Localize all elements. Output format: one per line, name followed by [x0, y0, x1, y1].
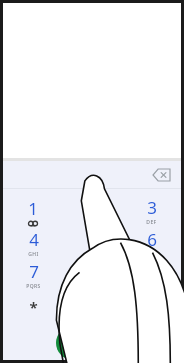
staticText: 6 [147, 228, 157, 251]
staticText: 1 [28, 197, 38, 220]
button[interactable]: 0 [63, 291, 122, 323]
button[interactable]: * [3, 291, 63, 323]
staticText: PQRS [26, 283, 41, 290]
button[interactable]: 4 [3, 227, 63, 259]
staticText: JKL [89, 251, 98, 258]
staticText: GHI [28, 251, 39, 258]
button[interactable]: 8 [63, 259, 122, 291]
button[interactable]: 6 [122, 227, 181, 259]
staticText: 4 [29, 228, 39, 251]
button[interactable]: 7 [3, 259, 63, 291]
button[interactable]: 3 [122, 195, 181, 227]
staticText: 7 [29, 260, 39, 283]
button[interactable]: Backspace [148, 164, 174, 186]
button[interactable]: 9 [122, 259, 181, 291]
button[interactable]: 2 [63, 195, 122, 227]
staticText: 3 [147, 196, 157, 219]
staticText: 5 [88, 228, 98, 251]
staticText: 9 [147, 260, 157, 283]
staticText: MNO [145, 251, 159, 258]
button[interactable]: Call [56, 326, 128, 360]
button[interactable]: 1 [3, 195, 63, 227]
staticText: * [29, 297, 38, 317]
button[interactable]: # [122, 291, 181, 323]
button[interactable]: 5 [63, 227, 122, 259]
staticText: DEF [146, 219, 157, 226]
